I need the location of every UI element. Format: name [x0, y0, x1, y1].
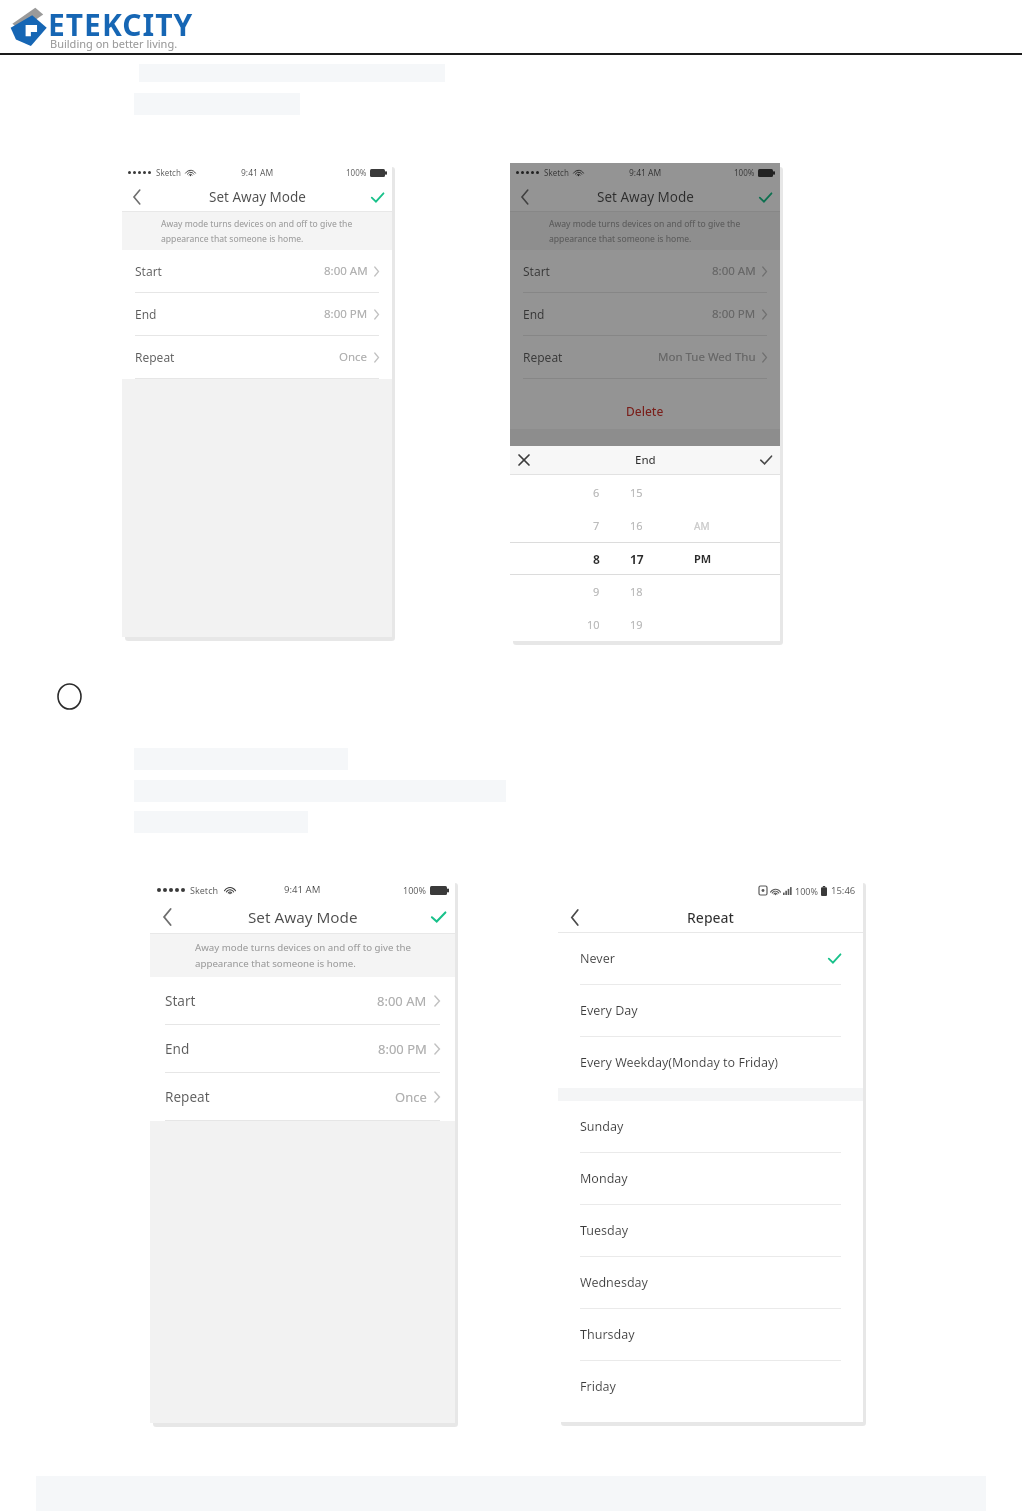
- button[interactable]: Every Weekday(Monday to Friday): [558, 1037, 863, 1088]
- staticText: 8:00 PM: [324, 306, 368, 322]
- button[interactable]: Repeat: [122, 336, 392, 378]
- staticText: 8:00 AM: [324, 263, 368, 279]
- staticText: 8:00 PM: [378, 1040, 427, 1058]
- staticText: Set Away Mode: [209, 188, 306, 206]
- staticText: 15: [630, 485, 643, 500]
- staticText: 9:41 AM: [629, 167, 662, 179]
- button[interactable]: End: [150, 1025, 455, 1072]
- staticText: Once: [339, 349, 368, 365]
- staticText: AM: [694, 519, 710, 533]
- staticText: Every Day: [580, 1002, 638, 1019]
- staticText: Sunday: [580, 1118, 624, 1135]
- staticText: Set Away Mode: [248, 907, 358, 928]
- staticText: End: [135, 306, 157, 322]
- button[interactable]: Start: [122, 250, 392, 292]
- button[interactable]: Done: [752, 446, 780, 474]
- staticText: Once: [395, 1088, 427, 1106]
- staticText: Start: [165, 992, 196, 1010]
- button[interactable]: Never: [558, 933, 863, 984]
- button[interactable]: End: [122, 293, 392, 335]
- staticText: 100%: [403, 884, 427, 896]
- staticText: End: [165, 1040, 190, 1058]
- staticText: 8:00 AM: [377, 992, 427, 1010]
- staticText: 16: [630, 518, 643, 533]
- button[interactable]: Thursday: [558, 1309, 863, 1360]
- staticText: End: [523, 306, 545, 322]
- staticText: PM: [694, 551, 712, 566]
- button[interactable]: Repeat: [150, 1073, 455, 1120]
- staticText: 17: [630, 551, 644, 567]
- staticText: appearance that someone is home.: [195, 957, 356, 970]
- staticText: Friday: [580, 1378, 616, 1395]
- staticText: Start: [523, 263, 550, 279]
- staticText: Thursday: [580, 1326, 635, 1343]
- staticText: Sketch: [190, 884, 219, 896]
- staticText: 8:00 PM: [712, 306, 756, 322]
- button[interactable]: Every Day: [558, 985, 863, 1036]
- staticText: Sketch: [156, 167, 181, 178]
- staticText: 9:41 AM: [284, 883, 321, 896]
- staticText: Sketch: [544, 167, 569, 178]
- staticText: appearance that someone is home.: [549, 233, 692, 245]
- staticText: End: [635, 452, 656, 468]
- staticText: 100%: [795, 885, 818, 897]
- staticText: Repeat: [523, 349, 563, 365]
- staticText: 9: [593, 584, 600, 599]
- staticText: Building on better living.: [50, 36, 178, 51]
- staticText: 9:41 AM: [241, 167, 274, 179]
- button[interactable]: Friday: [558, 1361, 863, 1412]
- staticText: 15:46: [831, 884, 856, 897]
- button[interactable]: Tuesday: [558, 1205, 863, 1256]
- staticText: 10: [587, 617, 600, 632]
- button[interactable]: Confirm: [362, 182, 392, 212]
- button[interactable]: Back: [558, 901, 592, 933]
- staticText: ETEKCITY: [48, 4, 194, 45]
- staticText: Repeat: [165, 1088, 210, 1106]
- button[interactable]: Close: [510, 446, 538, 474]
- staticText: 19: [630, 617, 643, 632]
- staticText: appearance that someone is home.: [161, 233, 304, 245]
- staticText: Mon Tue Wed Thu: [658, 349, 756, 365]
- staticText: Wednesday: [580, 1274, 648, 1291]
- staticText: 100%: [734, 167, 755, 178]
- button[interactable]: Sunday: [558, 1101, 863, 1152]
- staticText: Set Away Mode: [597, 188, 694, 206]
- button[interactable]: Confirm: [421, 900, 455, 934]
- staticText: Never: [580, 950, 615, 967]
- staticText: 100%: [346, 167, 367, 178]
- button[interactable]: Confirm: [750, 182, 780, 212]
- staticText: 18: [630, 584, 643, 599]
- button[interactable]: Back: [510, 182, 540, 212]
- staticText: Start: [135, 263, 162, 279]
- staticText: Repeat: [687, 908, 734, 927]
- staticText: 6: [593, 485, 600, 500]
- button[interactable]: Start: [510, 250, 780, 292]
- staticText: Every Weekday(Monday to Friday): [580, 1054, 779, 1071]
- staticText: Away mode turns devices on and off to gi…: [161, 218, 353, 230]
- staticText: Monday: [580, 1170, 628, 1187]
- button[interactable]: Monday: [558, 1153, 863, 1204]
- staticText: Repeat: [135, 349, 175, 365]
- staticText: Away mode turns devices on and off to gi…: [195, 941, 411, 954]
- button[interactable]: Wednesday: [558, 1257, 863, 1308]
- staticText: 8:00 AM: [712, 263, 756, 279]
- staticText: Delete: [626, 403, 664, 419]
- button[interactable]: Repeat: [510, 336, 780, 378]
- button[interactable]: End: [510, 293, 780, 335]
- staticText: Away mode turns devices on and off to gi…: [549, 218, 741, 230]
- staticText: Tuesday: [580, 1222, 629, 1239]
- button[interactable]: Back: [150, 900, 184, 934]
- staticText: 7: [593, 518, 600, 533]
- button[interactable]: Back: [122, 182, 152, 212]
- staticText: 8: [593, 551, 600, 567]
- button[interactable]: Start: [150, 977, 455, 1024]
